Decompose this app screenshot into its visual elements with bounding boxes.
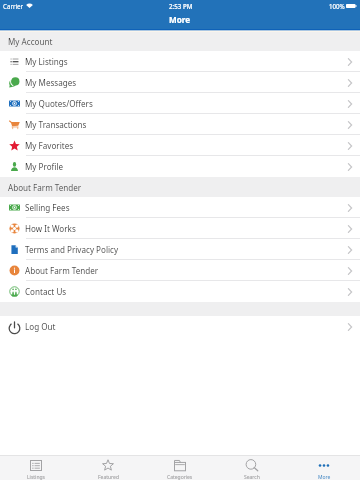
button[interactable]: Log Out xyxy=(0,316,360,337)
button[interactable]: Selling Fees xyxy=(0,197,360,218)
button[interactable]: My Messages xyxy=(0,72,360,93)
staticText: Carrier xyxy=(3,2,24,10)
staticText: Terms and Privacy Policy xyxy=(25,244,119,255)
staticText: My Messages xyxy=(25,77,77,88)
staticText: My Quotes/Offers xyxy=(25,98,93,109)
button[interactable]: My Quotes/Offers xyxy=(0,93,360,114)
staticText: My Profile xyxy=(25,161,64,172)
button[interactable]: Featured xyxy=(72,456,144,480)
staticText: My Account xyxy=(8,36,53,47)
staticText: About Farm Tender xyxy=(25,265,99,276)
button[interactable]: About Farm Tender xyxy=(0,260,360,281)
button[interactable]: My Profile xyxy=(0,156,360,177)
button[interactable]: Listings xyxy=(0,456,72,480)
staticText: Selling Fees xyxy=(25,202,70,213)
staticText: More xyxy=(169,14,191,25)
staticText: Log Out xyxy=(25,321,56,332)
staticText: More xyxy=(318,474,331,480)
button[interactable]: Contact Us xyxy=(0,281,360,302)
staticText: 100% xyxy=(329,2,345,10)
staticText: My Transactions xyxy=(25,119,87,130)
staticText: Listings xyxy=(27,474,45,480)
staticText: Contact Us xyxy=(25,286,67,297)
button[interactable]: My Transactions xyxy=(0,114,360,135)
staticText: 2:53 PM xyxy=(169,2,193,10)
button[interactable]: More xyxy=(288,456,360,480)
staticText: About Farm Tender xyxy=(8,182,82,193)
staticText: Featured xyxy=(98,474,119,480)
staticText: My Favorites xyxy=(25,140,74,151)
button[interactable]: Terms and Privacy Policy xyxy=(0,239,360,260)
button[interactable]: My Favorites xyxy=(0,135,360,156)
staticText: How It Works xyxy=(25,223,76,234)
staticText: My Listings xyxy=(25,56,68,67)
button[interactable]: How It Works xyxy=(0,218,360,239)
button[interactable]: Categories xyxy=(144,456,216,480)
button[interactable]: My Listings xyxy=(0,51,360,72)
button[interactable]: Search xyxy=(216,456,288,480)
staticText: Categories xyxy=(167,474,193,480)
staticText: Search xyxy=(244,474,260,480)
